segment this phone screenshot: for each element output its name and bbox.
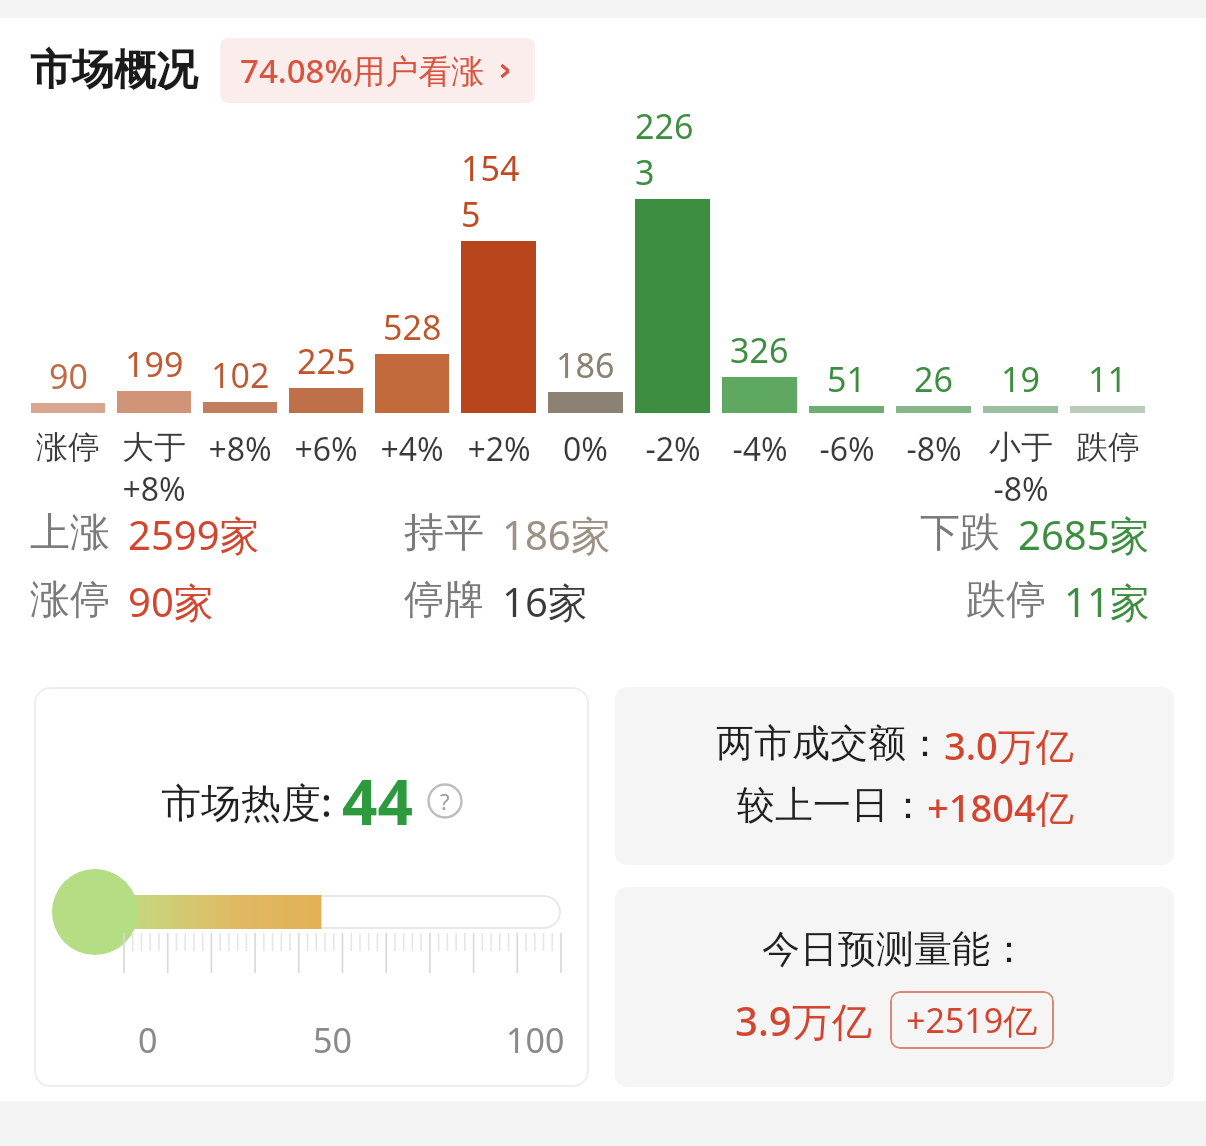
staticText: 3.9万亿 <box>735 993 872 1048</box>
staticText: 102 <box>211 352 270 398</box>
staticText: 跌停 <box>966 574 1046 624</box>
staticText: 199 <box>125 341 184 387</box>
staticText: -6% <box>819 427 875 471</box>
staticText: 上涨 <box>30 507 110 557</box>
staticText: 44 <box>342 759 413 843</box>
staticText: 90家 <box>128 574 214 629</box>
staticText: 11家 <box>1064 574 1150 629</box>
staticText: -8% <box>993 467 1049 503</box>
staticText: 2685家 <box>1018 507 1150 562</box>
staticText: +1804亿 <box>927 781 1074 833</box>
staticText: 90 <box>49 353 88 399</box>
staticText: 326 <box>730 327 789 373</box>
button[interactable]: 市场热度: <box>34 687 589 1087</box>
staticText: 50 <box>313 1017 352 1063</box>
staticText: +2% <box>467 427 531 471</box>
staticText: 16家 <box>502 574 588 629</box>
staticText: 186 <box>556 342 615 388</box>
staticText: 186家 <box>502 507 611 562</box>
button[interactable]: 74.08%用户看涨 <box>220 38 535 103</box>
button[interactable]: 今日预测量能： <box>615 887 1174 1087</box>
staticText: 市场概况 <box>30 44 198 97</box>
staticText: +6% <box>294 427 358 471</box>
staticText: 涨停 <box>30 574 110 624</box>
staticText: 225 <box>297 338 356 384</box>
staticText: 100 <box>506 1017 565 1063</box>
staticText: 较上一日： <box>737 781 927 829</box>
staticText: +2519亿 <box>906 997 1038 1043</box>
button[interactable]: 两市成交额： <box>615 687 1174 865</box>
staticText: 2599家 <box>128 507 260 562</box>
staticText: 持平 <box>404 507 484 557</box>
staticText: 2263 <box>635 103 710 195</box>
staticText: 市场热度: <box>161 774 332 829</box>
staticText: 今日预测量能： <box>762 925 1028 973</box>
staticText: 1545 <box>461 145 536 237</box>
staticText: 两市成交额： <box>716 719 944 767</box>
staticText: 大于 <box>122 427 186 467</box>
staticText: 3.0万亿 <box>944 719 1074 771</box>
staticText: ? <box>440 786 450 816</box>
staticText: 下跌 <box>920 507 1000 557</box>
staticText: 0% <box>563 427 608 471</box>
staticText: 51 <box>827 356 866 402</box>
staticText: +4% <box>380 427 444 471</box>
staticText: 11 <box>1088 356 1127 402</box>
staticText: 26 <box>914 356 953 402</box>
button[interactable]: 帮助说明 <box>427 783 463 819</box>
staticText: 528 <box>383 304 442 350</box>
staticText: +8% <box>208 427 272 471</box>
staticText: 小于 <box>989 427 1053 467</box>
staticText: +8% <box>122 467 186 503</box>
staticText: 0 <box>138 1017 158 1063</box>
staticText: -8% <box>906 427 962 471</box>
staticText: 涨停 <box>36 427 100 467</box>
staticText: -2% <box>645 427 701 471</box>
staticText: 74.08%用户看涨 <box>240 48 485 93</box>
staticText: 停牌 <box>404 574 484 624</box>
staticText: 19 <box>1001 356 1040 402</box>
staticText: -4% <box>732 427 788 471</box>
staticText: 跌停 <box>1076 427 1140 467</box>
